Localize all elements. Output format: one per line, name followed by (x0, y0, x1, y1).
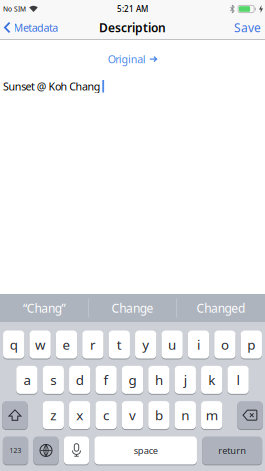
staticText: Changed (197, 300, 245, 316)
button[interactable]: Changed (177, 294, 265, 322)
staticText: 5:21 AM (117, 4, 148, 14)
staticText: t (117, 336, 122, 353)
button[interactable]: return (202, 436, 262, 465)
button[interactable]: Original (108, 52, 157, 66)
button[interactable]: Back (0, 20, 58, 35)
staticText: w (35, 336, 45, 353)
button[interactable]: h (148, 365, 169, 394)
button[interactable]: “Chang” (0, 294, 88, 322)
button[interactable]: Change (89, 294, 176, 322)
button[interactable]: r (82, 330, 103, 359)
button[interactable]: w (29, 330, 51, 359)
button[interactable]: space (94, 436, 197, 465)
staticText: 123 (9, 446, 21, 455)
button[interactable]: d (69, 365, 90, 394)
button[interactable]: b (148, 401, 169, 430)
staticText: b (155, 406, 163, 424)
staticText: p (247, 336, 255, 353)
button[interactable]: n (175, 401, 196, 430)
button[interactable]: x (69, 401, 90, 430)
staticText: r (90, 336, 96, 353)
button[interactable]: Save (234, 19, 265, 35)
button[interactable]: Next keyboard (33, 436, 59, 465)
staticText: a (23, 371, 30, 389)
button[interactable]: m (201, 401, 222, 430)
staticText: No SIM (3, 5, 26, 13)
staticText: n (181, 406, 189, 424)
staticText: v (129, 406, 136, 424)
staticText: u (168, 336, 176, 353)
button[interactable]: a (16, 365, 37, 394)
staticText: l (237, 371, 240, 389)
staticText: y (142, 336, 149, 353)
staticText: z (50, 406, 56, 424)
staticText: return (218, 444, 246, 457)
button[interactable]: l (227, 365, 249, 394)
button[interactable]: u (161, 330, 183, 359)
staticText: i (197, 336, 200, 353)
staticText: s (50, 371, 56, 389)
button[interactable]: c (95, 401, 117, 430)
button[interactable]: s (43, 365, 64, 394)
staticText: Save (234, 19, 261, 35)
staticText: g (128, 371, 136, 389)
button[interactable]: Numbers (3, 436, 28, 465)
button[interactable]: v (122, 401, 143, 430)
staticText: Description (99, 19, 166, 35)
staticText: d (76, 371, 84, 389)
button[interactable]: i (188, 330, 209, 359)
staticText: h (155, 371, 163, 389)
staticText: space (134, 444, 158, 457)
staticText: q (10, 336, 18, 353)
staticText: k (208, 371, 215, 389)
staticText: Change (112, 300, 153, 316)
button[interactable]: o (214, 330, 235, 359)
button[interactable]: k (201, 365, 222, 394)
staticText: e (62, 336, 70, 353)
button[interactable]: t (109, 330, 130, 359)
button[interactable]: z (43, 401, 64, 430)
button[interactable]: y (135, 330, 156, 359)
staticText: Sunset @ Koh Chang (3, 79, 101, 93)
staticText: o (221, 336, 229, 353)
button[interactable]: p (241, 330, 262, 359)
staticText: j (184, 371, 187, 389)
staticText: Metadata (13, 20, 58, 35)
button[interactable]: Shift (2, 401, 28, 430)
button[interactable]: f (95, 365, 117, 394)
staticText: “Chang” (23, 300, 65, 316)
button[interactable]: j (175, 365, 196, 394)
button[interactable]: g (122, 365, 143, 394)
button[interactable]: Delete (237, 401, 263, 430)
button[interactable]: q (3, 330, 24, 359)
staticText: Original (108, 52, 146, 66)
staticText: f (104, 371, 109, 389)
staticText: m (206, 406, 218, 424)
staticText: c (103, 406, 109, 424)
button[interactable]: Dictate (64, 436, 89, 465)
button[interactable]: e (56, 330, 77, 359)
staticText: x (76, 406, 83, 424)
